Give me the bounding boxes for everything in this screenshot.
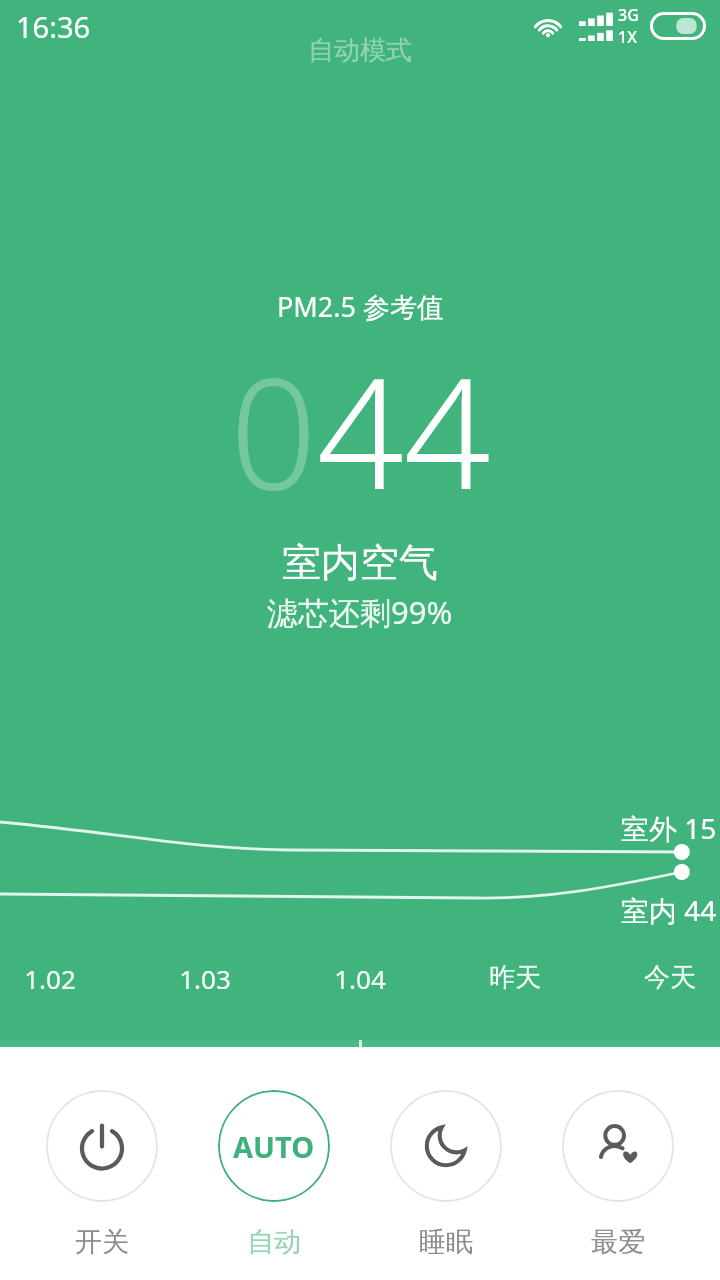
- staticText: 1.03: [179, 961, 231, 996]
- staticText: 最爱: [591, 1225, 645, 1259]
- staticText: 昨天: [489, 961, 541, 994]
- staticText: 室内 44: [621, 891, 717, 929]
- staticText: 开关: [75, 1225, 129, 1259]
- staticText: 今天: [644, 961, 696, 994]
- staticText: 3G: [618, 4, 639, 26]
- staticText: 1.02: [24, 961, 76, 996]
- staticText: PM2.5 参考值: [277, 288, 444, 325]
- button[interactable]: 开关: [32, 1090, 172, 1259]
- staticText: 1.04: [334, 961, 386, 996]
- staticText: 室外 15: [621, 809, 717, 847]
- staticText: 自动: [247, 1225, 301, 1259]
- staticText: 16:36: [16, 7, 91, 46]
- staticText: 0: [230, 327, 317, 534]
- staticText: 44: [317, 327, 491, 534]
- button[interactable]: 最爱: [548, 1090, 688, 1259]
- button[interactable]: 自动: [204, 1090, 344, 1259]
- staticText: 1X: [618, 26, 637, 48]
- button[interactable]: 睡眠: [376, 1090, 516, 1259]
- staticText: 自动模式: [308, 34, 412, 67]
- staticText: 睡眠: [419, 1225, 473, 1259]
- staticText: 滤芯还剩99%: [267, 591, 453, 633]
- staticText: 室内空气: [282, 538, 438, 587]
- staticText: AUTO: [233, 1127, 315, 1166]
